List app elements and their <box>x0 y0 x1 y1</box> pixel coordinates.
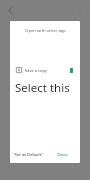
staticText: Once <box>57 152 68 158</box>
button[interactable]: Save a copy toggle <box>69 68 74 73</box>
button[interactable]: "Set as Default" <box>10 146 45 163</box>
button[interactable]: Save a copy <box>10 63 80 77</box>
staticText: Select this app <box>15 80 80 96</box>
staticText: Save a copy <box>25 68 47 73</box>
button[interactable]: Back <box>3 3 17 17</box>
button[interactable]: Once <box>45 146 80 163</box>
staticText: "Set as Default" <box>13 152 43 157</box>
staticText: Open with other app <box>25 28 66 34</box>
